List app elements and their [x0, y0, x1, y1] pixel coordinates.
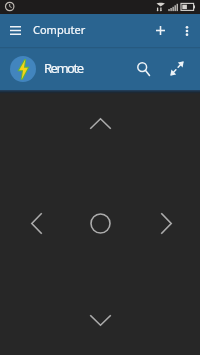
button[interactable]: Left: [14, 201, 58, 245]
button[interactable]: OK: [78, 201, 122, 245]
button[interactable]: Add: [146, 14, 174, 47]
button[interactable]: Full screen: [160, 47, 194, 90]
button[interactable]: Search: [126, 47, 160, 90]
staticText: Computer: [33, 22, 86, 37]
button[interactable]: Open navigation drawer: [0, 14, 30, 47]
button[interactable]: Right: [144, 201, 188, 245]
button[interactable]: Up: [78, 101, 122, 145]
button[interactable]: Down: [78, 298, 122, 342]
staticText: Remote: [44, 59, 83, 77]
button[interactable]: More options: [174, 14, 200, 47]
